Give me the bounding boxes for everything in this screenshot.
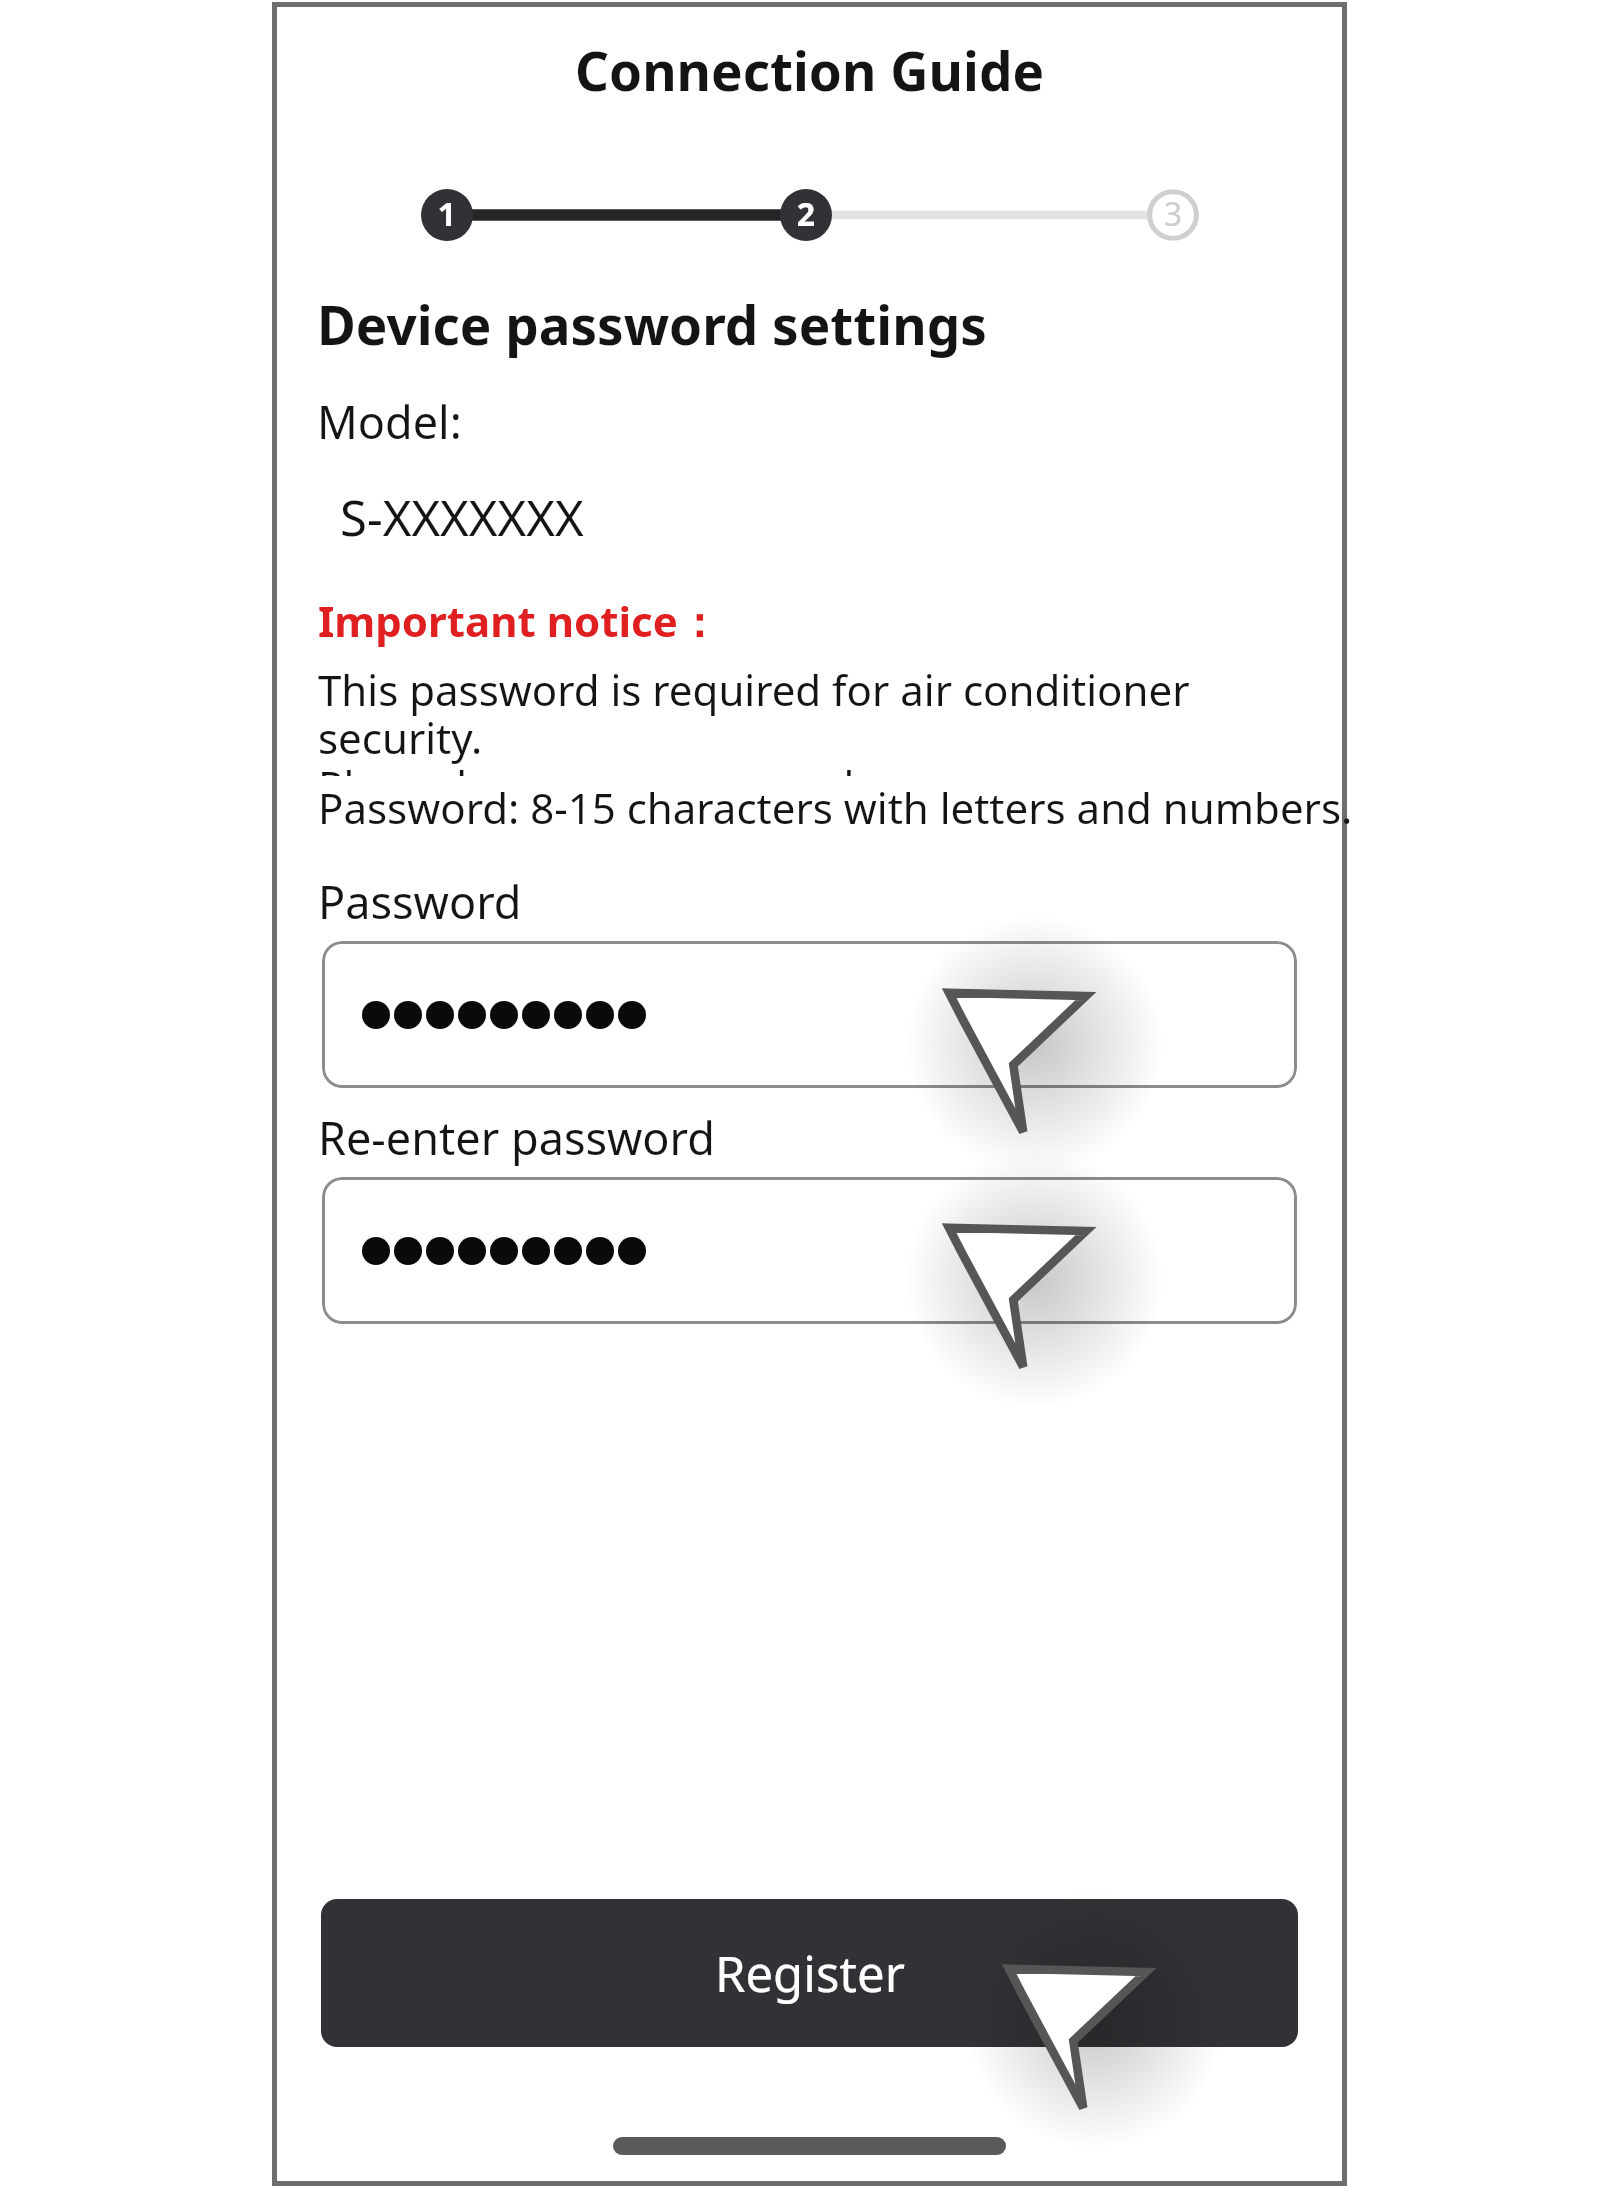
staticText: Important notice：: [318, 592, 720, 649]
staticText: Password: 8-15 characters with letters a…: [318, 779, 1353, 836]
staticText: 3: [1141, 192, 1205, 240]
staticText: Model:: [317, 391, 462, 452]
button[interactable]: [322, 1177, 1297, 1324]
button[interactable]: S-XXXXXXX: [322, 462, 1297, 572]
staticText: This password is required for air condit…: [318, 661, 1323, 776]
staticText: Re-enter password: [318, 1107, 715, 1168]
staticText: S-XXXXXXX: [340, 484, 584, 551]
staticText: Password: [318, 871, 522, 932]
staticText: Register: [715, 1940, 905, 2007]
button[interactable]: [322, 941, 1297, 1088]
other: Pointer: [944, 1207, 1109, 1367]
other: Pointer: [1004, 1948, 1169, 2108]
staticText: Connection Guide: [272, 34, 1347, 118]
staticText: 1: [415, 192, 479, 240]
other: Pointer: [944, 972, 1109, 1132]
staticText: Device password settings: [317, 288, 987, 360]
button[interactable]: Register: [321, 1899, 1298, 2047]
staticText: 2: [774, 192, 838, 240]
